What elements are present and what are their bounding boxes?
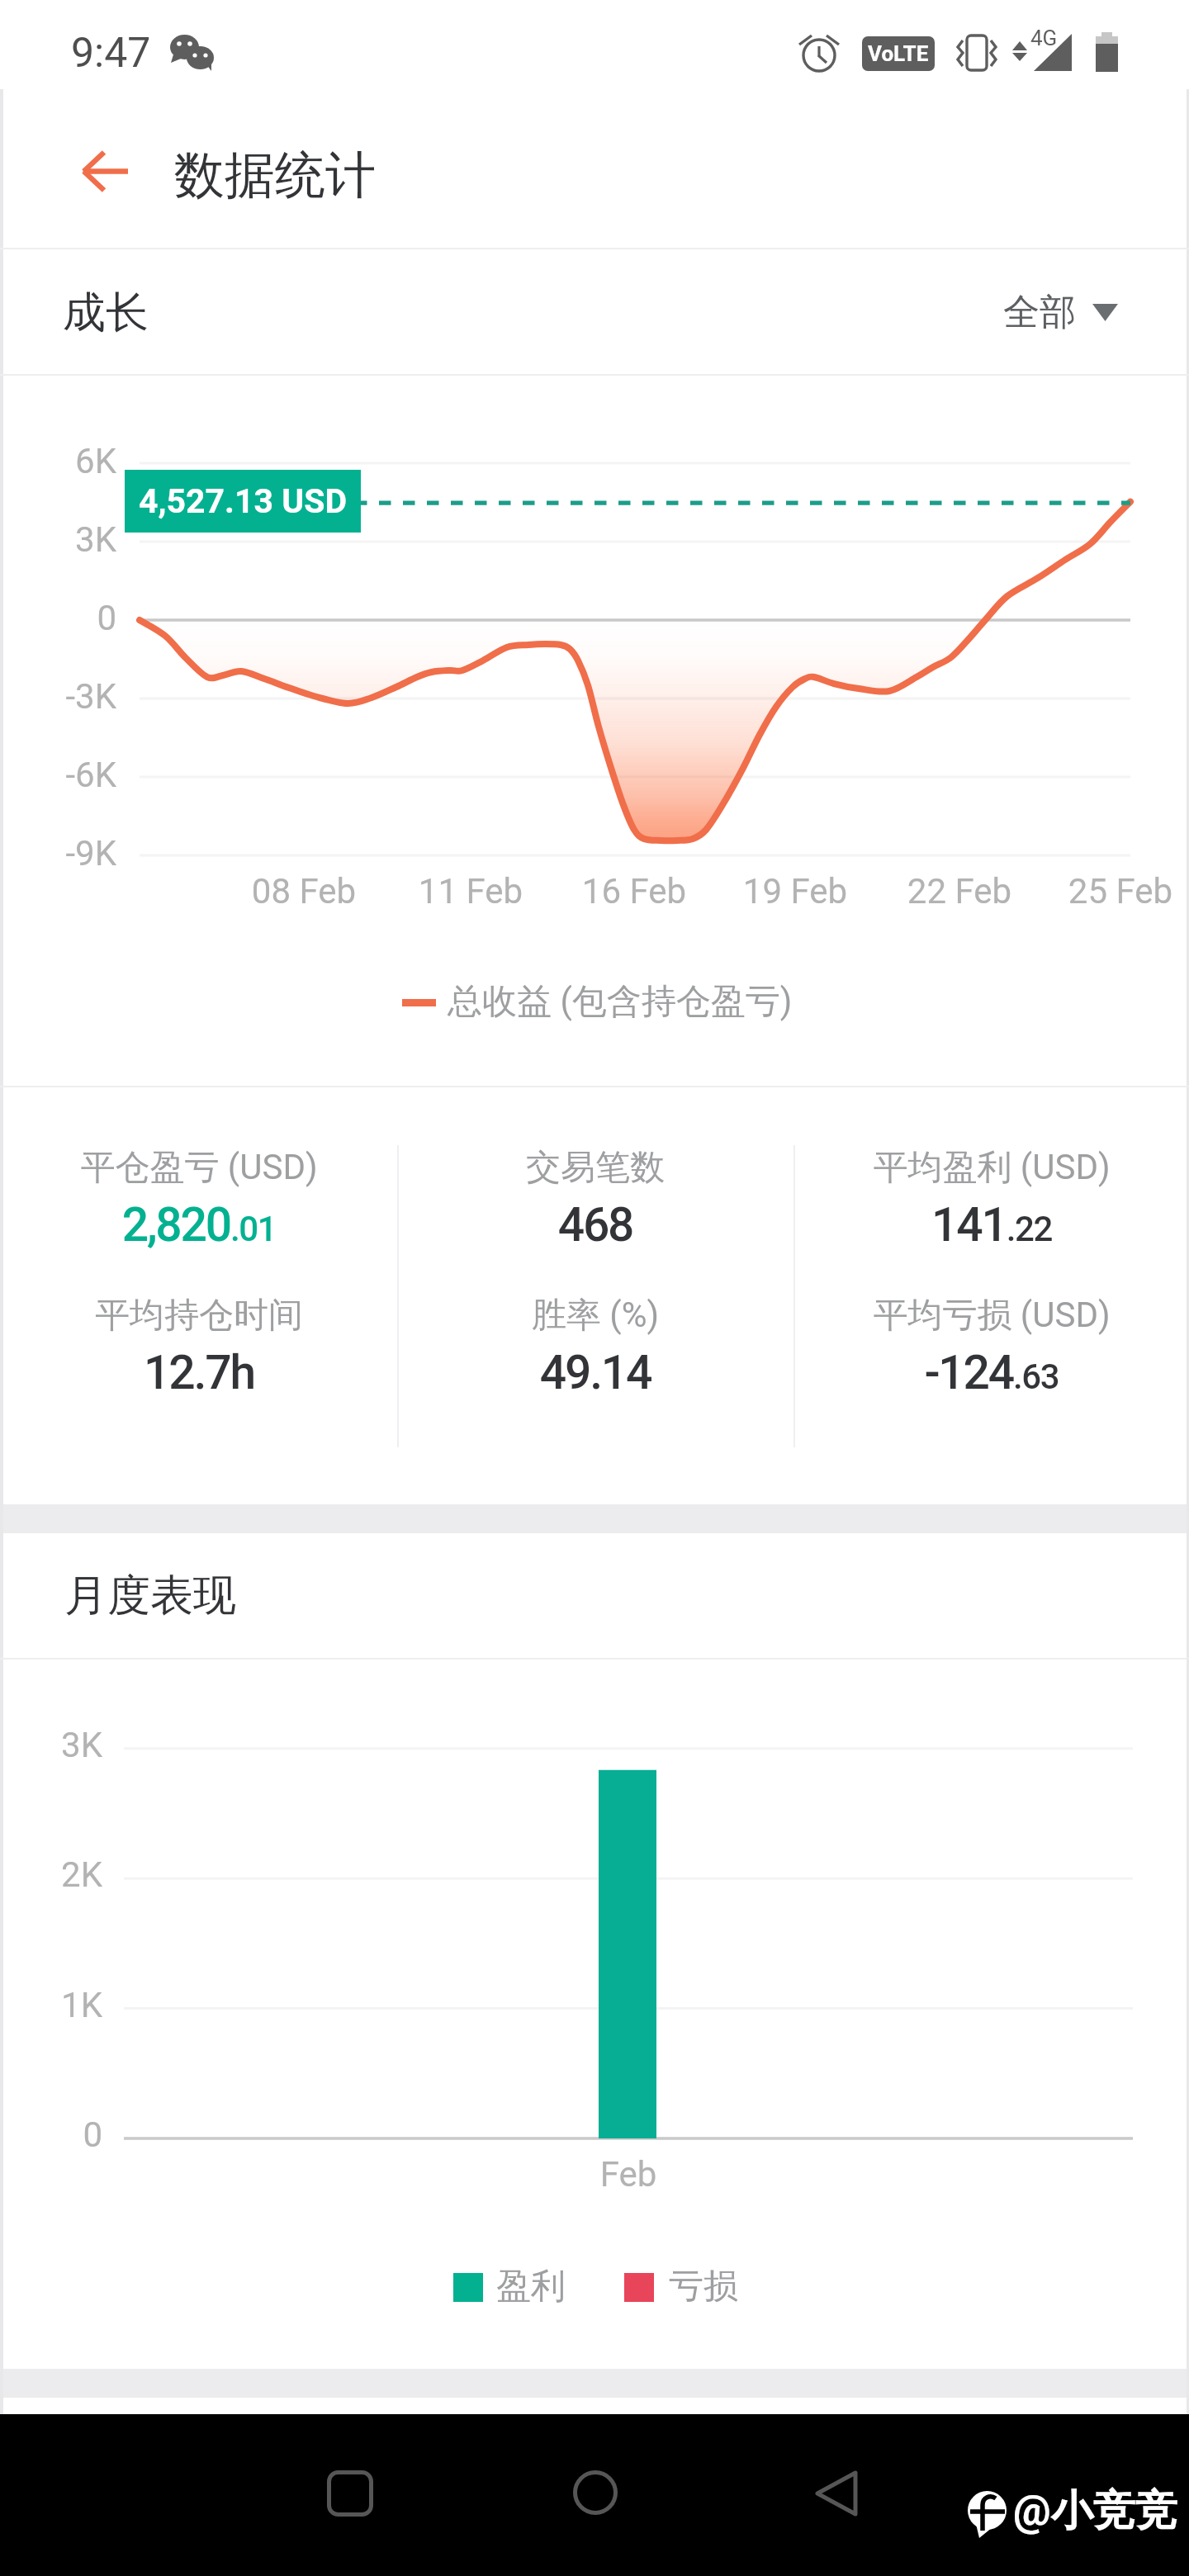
staticText: 25 Feb <box>873 871 1189 912</box>
staticText: 平均亏损 (USD) <box>744 1294 1189 1338</box>
staticText: 4,527.13 USD <box>139 481 348 521</box>
staticText: 9:47 <box>71 29 151 78</box>
staticText: 交易笔数 <box>348 1146 843 1190</box>
staticText: 08 Feb <box>56 871 552 912</box>
staticText: -9K <box>0 833 116 874</box>
staticText: 468 <box>405 1197 785 1252</box>
staticText: 0 <box>0 2114 102 2155</box>
staticText: 11 Feb <box>223 871 718 912</box>
staticText: @小竞竞 <box>1013 2484 1177 2537</box>
staticText: 亏损 <box>669 2265 738 2308</box>
staticText: 总收益 (包含持仓盈亏) <box>448 980 793 1024</box>
staticText: -6K <box>0 755 116 795</box>
staticText: 4G <box>1030 26 1058 50</box>
staticText: 数据统计 <box>174 144 376 207</box>
button[interactable]: Recents <box>301 2446 400 2545</box>
staticText: 3K <box>0 519 116 560</box>
staticText: 平仓盈亏 (USD) <box>0 1146 447 1190</box>
staticText: 6K <box>0 441 116 481</box>
button[interactable]: Back <box>791 2446 890 2545</box>
staticText: 2K <box>0 1854 102 1895</box>
staticText: 全部 <box>1003 290 1076 335</box>
staticText: 1K <box>0 1985 102 2025</box>
staticText: VoLTE <box>868 41 929 66</box>
staticText: 2,820.01 <box>9 1197 389 1252</box>
staticText: -3K <box>0 676 116 717</box>
staticText: 16 Feb <box>386 871 882 912</box>
staticText: 盈利 <box>496 2265 566 2308</box>
staticText: 22 Feb <box>712 871 1189 912</box>
button[interactable]: Back <box>54 120 155 224</box>
staticText: 19 Feb <box>547 871 1043 912</box>
staticText: 平均持仓时间 <box>0 1294 447 1338</box>
button[interactable]: Home <box>545 2446 644 2545</box>
staticText: 3K <box>0 1725 102 1765</box>
staticText: 49.14 <box>405 1345 785 1400</box>
staticText: 12.7h <box>9 1345 389 1400</box>
staticText: -124.63 <box>802 1345 1182 1400</box>
staticText: 成长 <box>63 286 149 340</box>
staticText: Feb <box>381 2154 876 2195</box>
staticText: 0 <box>0 598 116 638</box>
staticText: 平均盈利 (USD) <box>744 1146 1189 1190</box>
staticText: 141.22 <box>802 1197 1182 1252</box>
staticText: 胜率 (%) <box>348 1294 843 1338</box>
staticText: 月度表现 <box>64 1569 236 1623</box>
button[interactable]: 全部 <box>1003 260 1152 364</box>
